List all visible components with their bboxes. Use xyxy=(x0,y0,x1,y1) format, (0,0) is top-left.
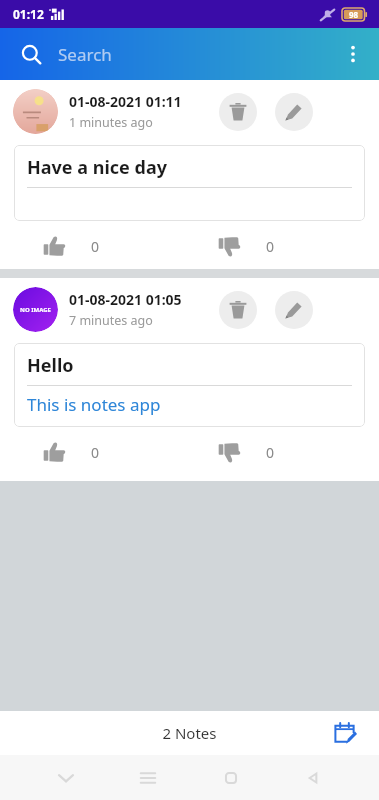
staticText: 1 minutes ago xyxy=(69,114,153,131)
staticText: Search xyxy=(58,43,112,66)
button[interactable]: Hide xyxy=(39,758,93,798)
staticText: Have a nice day xyxy=(27,155,167,180)
button[interactable]: Edit xyxy=(275,291,313,329)
staticText: 7 minutes ago xyxy=(69,312,153,329)
button[interactable]: Search xyxy=(58,34,329,74)
button[interactable]: Search xyxy=(12,35,50,73)
button[interactable]: 0 xyxy=(215,436,278,469)
button[interactable]: Edit xyxy=(275,93,313,131)
staticText: 98 xyxy=(349,9,359,20)
button[interactable]: New note xyxy=(325,713,365,753)
button[interactable]: Hello xyxy=(14,343,365,427)
button[interactable]: Have a nice day xyxy=(14,145,365,221)
button[interactable]: Menu xyxy=(121,758,175,798)
staticText: 0 xyxy=(91,237,100,256)
staticText: 0 xyxy=(91,443,100,462)
button[interactable]: 0 xyxy=(40,436,103,469)
button[interactable]: 0 xyxy=(215,230,278,263)
button[interactable]: Home xyxy=(204,758,258,798)
staticText: 01-08-2021 01:11 xyxy=(69,92,182,111)
button[interactable]: NO IMAGE xyxy=(13,287,58,332)
button[interactable]: 0 xyxy=(40,230,103,263)
staticText: Hello xyxy=(27,353,74,378)
button[interactable] xyxy=(13,89,58,134)
staticText: 01-08-2021 01:05 xyxy=(69,290,182,309)
button[interactable]: Back xyxy=(286,758,340,798)
button[interactable]: Delete xyxy=(219,291,257,329)
staticText: 2 Notes xyxy=(162,723,217,743)
staticText: This is notes app xyxy=(27,393,161,416)
button[interactable]: Delete xyxy=(219,93,257,131)
staticText: NO IMAGE xyxy=(20,306,51,314)
staticText: 01:12 xyxy=(13,6,44,22)
button[interactable]: More options xyxy=(333,34,373,74)
staticText: 0 xyxy=(266,237,275,256)
staticText: 0 xyxy=(266,443,275,462)
